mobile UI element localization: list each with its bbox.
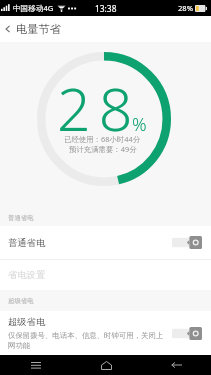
staticText: 仅保留拨号、电话本、信息、时钟可用，关闭上网功能 (8, 331, 166, 350)
staticText: 28 (57, 68, 141, 148)
button[interactable]: Toggle (172, 236, 202, 249)
staticText: 省电设置 (8, 269, 46, 281)
button[interactable]: 普通省电 (0, 226, 211, 259)
staticText: % (132, 112, 147, 137)
button[interactable]: 超级省电 (0, 311, 211, 355)
staticText: 中国移动4G (13, 3, 54, 13)
button[interactable]: Home (71, 355, 141, 375)
staticText: 电量节省 (16, 22, 61, 36)
button[interactable]: Toggle (172, 327, 202, 340)
button[interactable]: Menu (0, 355, 71, 375)
staticText: 超级省电 (8, 297, 34, 305)
staticText: 普通省电 (8, 237, 46, 249)
button[interactable]: 省电设置 (0, 260, 211, 290)
staticText: 28% (178, 3, 193, 13)
staticText: 普通省电 (8, 214, 34, 222)
staticText: 预计充满需要：49分 (69, 144, 137, 154)
button[interactable]: Back (0, 21, 16, 37)
staticText: 13:38 (95, 3, 117, 14)
button[interactable]: Back (141, 355, 211, 375)
staticText: 超级省电 (8, 316, 46, 328)
staticText: 已经使用：68小时44分 (64, 134, 141, 144)
